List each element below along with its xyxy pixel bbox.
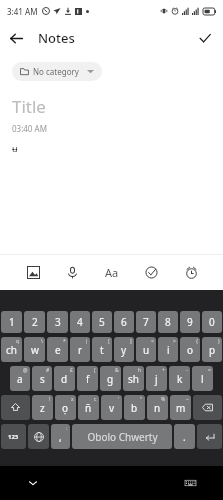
staticText: ~	[186, 396, 189, 403]
staticText: {	[196, 338, 198, 345]
staticText: 9	[187, 315, 193, 329]
staticText: y	[121, 343, 127, 357]
staticText: z	[40, 401, 45, 415]
button[interactable]: y	[114, 337, 134, 362]
button[interactable]: w	[24, 337, 45, 362]
staticText: ,	[59, 430, 62, 444]
button[interactable]: 9	[180, 311, 200, 333]
button[interactable]: Checklist	[138, 259, 164, 285]
staticText: 6	[121, 315, 127, 329]
staticText: sh	[128, 372, 139, 386]
staticText: [	[108, 338, 110, 345]
button[interactable]: .	[174, 424, 195, 449]
button[interactable]: 2	[24, 311, 45, 333]
staticText: %	[161, 396, 166, 403]
staticText: l	[201, 372, 204, 386]
button[interactable]: 123	[1, 424, 26, 449]
button[interactable]: 5	[92, 311, 112, 333]
staticText: ch	[6, 343, 17, 357]
button[interactable]: ,	[51, 424, 70, 449]
button[interactable]: r	[70, 337, 90, 362]
staticText: (	[94, 367, 96, 374]
staticText: 5	[99, 315, 105, 329]
button[interactable]: k	[169, 366, 190, 391]
button[interactable]: d	[54, 366, 75, 391]
button[interactable]: i	[158, 337, 178, 362]
staticText: h	[138, 367, 142, 374]
button[interactable]: b	[124, 395, 145, 420]
button[interactable]: u	[136, 337, 156, 362]
button[interactable]: ñ	[78, 395, 99, 420]
button[interactable]: Back	[0, 22, 32, 54]
button[interactable]: Switch keyboard	[179, 472, 201, 494]
button[interactable]: 8	[158, 311, 178, 333]
staticText: b	[131, 401, 138, 415]
button[interactable]: v	[101, 395, 122, 420]
staticText: r	[78, 343, 83, 357]
staticText: =	[208, 367, 211, 374]
button[interactable]: a	[10, 366, 30, 391]
staticText: 4	[77, 315, 83, 329]
button[interactable]: ọ	[55, 395, 76, 420]
button[interactable]: p	[202, 337, 222, 362]
staticText: t	[100, 343, 104, 357]
button[interactable]: enter	[197, 424, 222, 449]
button[interactable]: globe	[28, 424, 49, 449]
button[interactable]: 4	[70, 311, 90, 333]
button[interactable]: s	[32, 366, 52, 391]
button[interactable]: Insert image	[20, 259, 46, 285]
staticText: 3	[55, 315, 61, 329]
button[interactable]: 0	[202, 311, 222, 333]
button[interactable]: g	[100, 366, 121, 391]
button[interactable]: shift	[1, 395, 30, 420]
button[interactable]: 3	[47, 311, 68, 333]
button[interactable]: f	[77, 366, 98, 391]
button[interactable]: Hide keyboard	[22, 472, 44, 494]
button[interactable]: n	[147, 395, 168, 420]
button[interactable]: m	[170, 395, 191, 420]
staticText: £	[70, 367, 73, 374]
staticText: n	[154, 401, 161, 415]
staticText: 1	[9, 315, 15, 329]
button[interactable]: z	[32, 395, 53, 420]
staticText: *	[63, 338, 66, 345]
staticText: :	[66, 425, 68, 432]
staticText: -	[186, 367, 188, 374]
staticText: 7	[143, 315, 149, 329]
staticText: 8	[165, 315, 171, 329]
button[interactable]: e	[47, 337, 68, 362]
staticText: }	[218, 338, 220, 345]
staticText: Notes	[38, 29, 75, 47]
staticText: @	[23, 367, 28, 374]
button[interactable]: sh	[123, 366, 144, 391]
staticText: q	[16, 338, 20, 345]
staticText: ʉ	[12, 142, 18, 154]
staticText: c	[94, 396, 97, 403]
button[interactable]: o	[180, 337, 200, 362]
button[interactable]: Text format	[99, 259, 125, 285]
button[interactable]: j	[146, 366, 167, 391]
staticText: s	[40, 372, 45, 386]
button[interactable]: Reminder	[178, 259, 204, 285]
button[interactable]: 1	[1, 311, 22, 333]
button[interactable]: Obolo Chwerty	[72, 424, 172, 449]
button[interactable]: Save note	[189, 22, 221, 54]
staticText: Aa	[105, 265, 119, 280]
button[interactable]: ch	[1, 337, 22, 362]
button[interactable]: t	[92, 337, 112, 362]
staticText: v	[109, 401, 115, 415]
button[interactable]: 7	[136, 311, 156, 333]
button[interactable]: 6	[114, 311, 134, 333]
button[interactable]: del	[193, 395, 222, 420]
staticText: No category	[33, 66, 79, 77]
staticText: |	[85, 338, 88, 345]
staticText: 2	[32, 315, 38, 329]
button[interactable]: Voice note	[59, 259, 85, 285]
staticText: k	[177, 372, 183, 386]
staticText: j	[155, 372, 158, 386]
button[interactable]: l	[192, 366, 213, 391]
staticText: e	[55, 343, 61, 357]
staticText: d	[61, 372, 68, 386]
button[interactable]: No category	[12, 62, 102, 81]
staticText: 123	[8, 433, 19, 441]
